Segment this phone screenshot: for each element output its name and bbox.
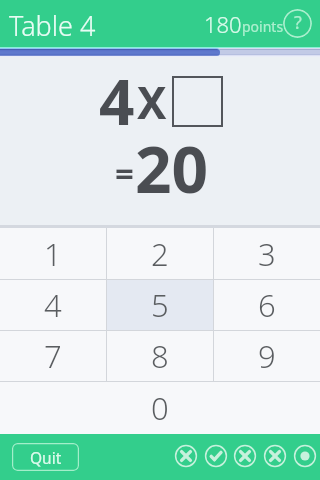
- staticText: 3: [258, 233, 276, 275]
- button[interactable]: 9: [213, 330, 320, 381]
- staticText: X: [137, 72, 167, 132]
- button[interactable]: 8: [106, 330, 213, 381]
- button[interactable]: 1: [0, 228, 106, 279]
- button[interactable]: 3: [213, 228, 320, 279]
- button[interactable]: 2: [106, 228, 213, 279]
- button[interactable]: 7: [0, 330, 106, 381]
- staticText: 4: [99, 59, 135, 143]
- staticText: 8: [151, 335, 169, 377]
- staticText: 9: [258, 335, 276, 377]
- button[interactable]: Wrong: [171, 441, 201, 471]
- staticText: 2: [151, 233, 169, 275]
- staticText: 1: [44, 233, 62, 275]
- staticText: Quit: [30, 447, 62, 468]
- staticText: 7: [44, 335, 62, 377]
- button[interactable]: 5: [106, 279, 213, 330]
- staticText: =: [115, 151, 134, 196]
- staticText: 5: [151, 284, 169, 326]
- button[interactable]: 6: [213, 279, 320, 330]
- staticText: Table 4: [9, 7, 96, 44]
- button[interactable]: Wrong: [230, 441, 260, 471]
- staticText: 0: [151, 387, 169, 429]
- staticText: points: [242, 17, 284, 36]
- button[interactable]: Help: [283, 9, 312, 38]
- button[interactable]: 0: [0, 381, 320, 434]
- staticText: 6: [258, 284, 276, 326]
- button[interactable]: Quit: [12, 443, 79, 471]
- button[interactable]: Correct: [201, 441, 231, 471]
- staticText: 4: [44, 284, 62, 326]
- button[interactable]: Current: [290, 441, 320, 471]
- staticText: 180: [204, 9, 242, 39]
- button[interactable]: Wrong: [260, 441, 290, 471]
- button[interactable]: 4: [0, 279, 106, 330]
- staticText: ?: [294, 10, 302, 35]
- staticText: 20: [135, 125, 209, 212]
